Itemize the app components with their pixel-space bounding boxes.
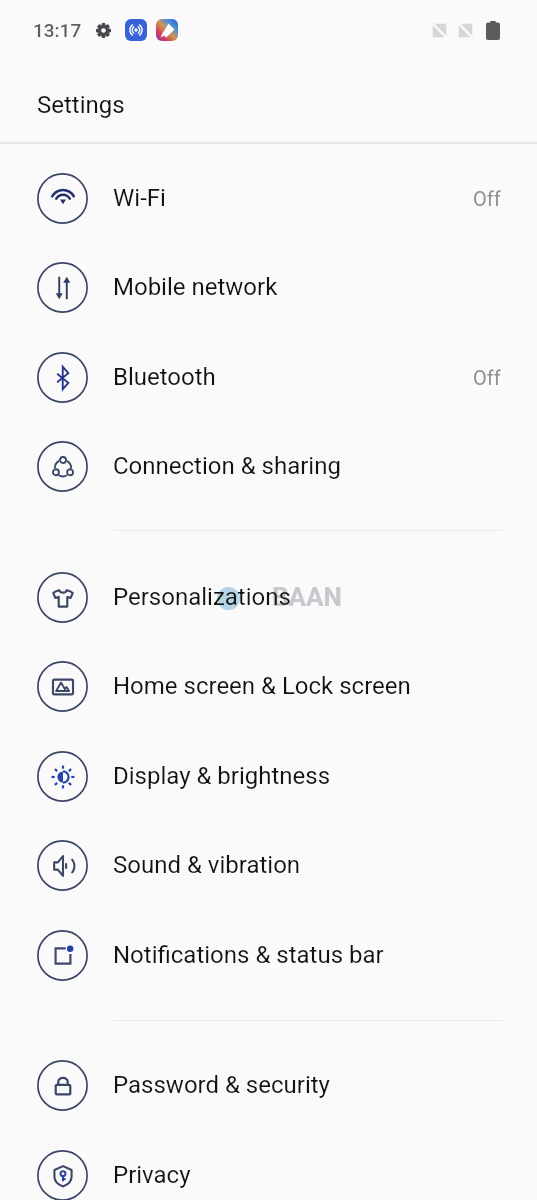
button[interactable]: Bluetooth	[0, 332, 537, 422]
other: Wireless sharing app	[125, 19, 147, 41]
staticText: Privacy	[113, 1161, 191, 1189]
button[interactable]: Mobile network	[0, 242, 537, 332]
other: No SIM card	[431, 22, 448, 39]
staticText: Display & brightness	[113, 762, 331, 790]
staticText: Sound & vibration	[113, 851, 301, 879]
button[interactable]: Sound & vibration	[0, 820, 537, 910]
button[interactable]: Display & brightness	[0, 731, 537, 821]
staticText: Mobile network	[113, 273, 278, 301]
other: Settings running	[96, 23, 111, 38]
staticText: Bluetooth	[113, 363, 216, 391]
staticText: BAAN	[272, 582, 342, 612]
button[interactable]: Personalizations	[0, 552, 537, 642]
staticText: Password & security	[113, 1071, 330, 1099]
staticText: Connection & sharing	[113, 452, 341, 480]
staticText: Wi-Fi	[113, 184, 166, 212]
button[interactable]: Connection & sharing	[0, 421, 537, 511]
staticText: Settings	[37, 91, 125, 119]
staticText: Notifications & status bar	[113, 941, 384, 969]
other: No SIM card	[457, 22, 474, 39]
staticText: Home screen & Lock screen	[113, 672, 411, 700]
staticText: Off	[473, 366, 501, 389]
staticText: 13:17	[33, 19, 82, 41]
staticText: Personalizations	[113, 583, 291, 611]
button[interactable]: Home screen & Lock screen	[0, 641, 537, 731]
other: Screen recorder app	[156, 19, 178, 41]
button[interactable]: Wi-Fi	[0, 153, 537, 243]
other: Battery full	[486, 21, 500, 40]
staticText: Off	[473, 187, 501, 210]
button[interactable]: Privacy	[0, 1130, 537, 1200]
button[interactable]: Password & security	[0, 1040, 537, 1130]
button[interactable]: Notifications & status bar	[0, 910, 537, 1000]
